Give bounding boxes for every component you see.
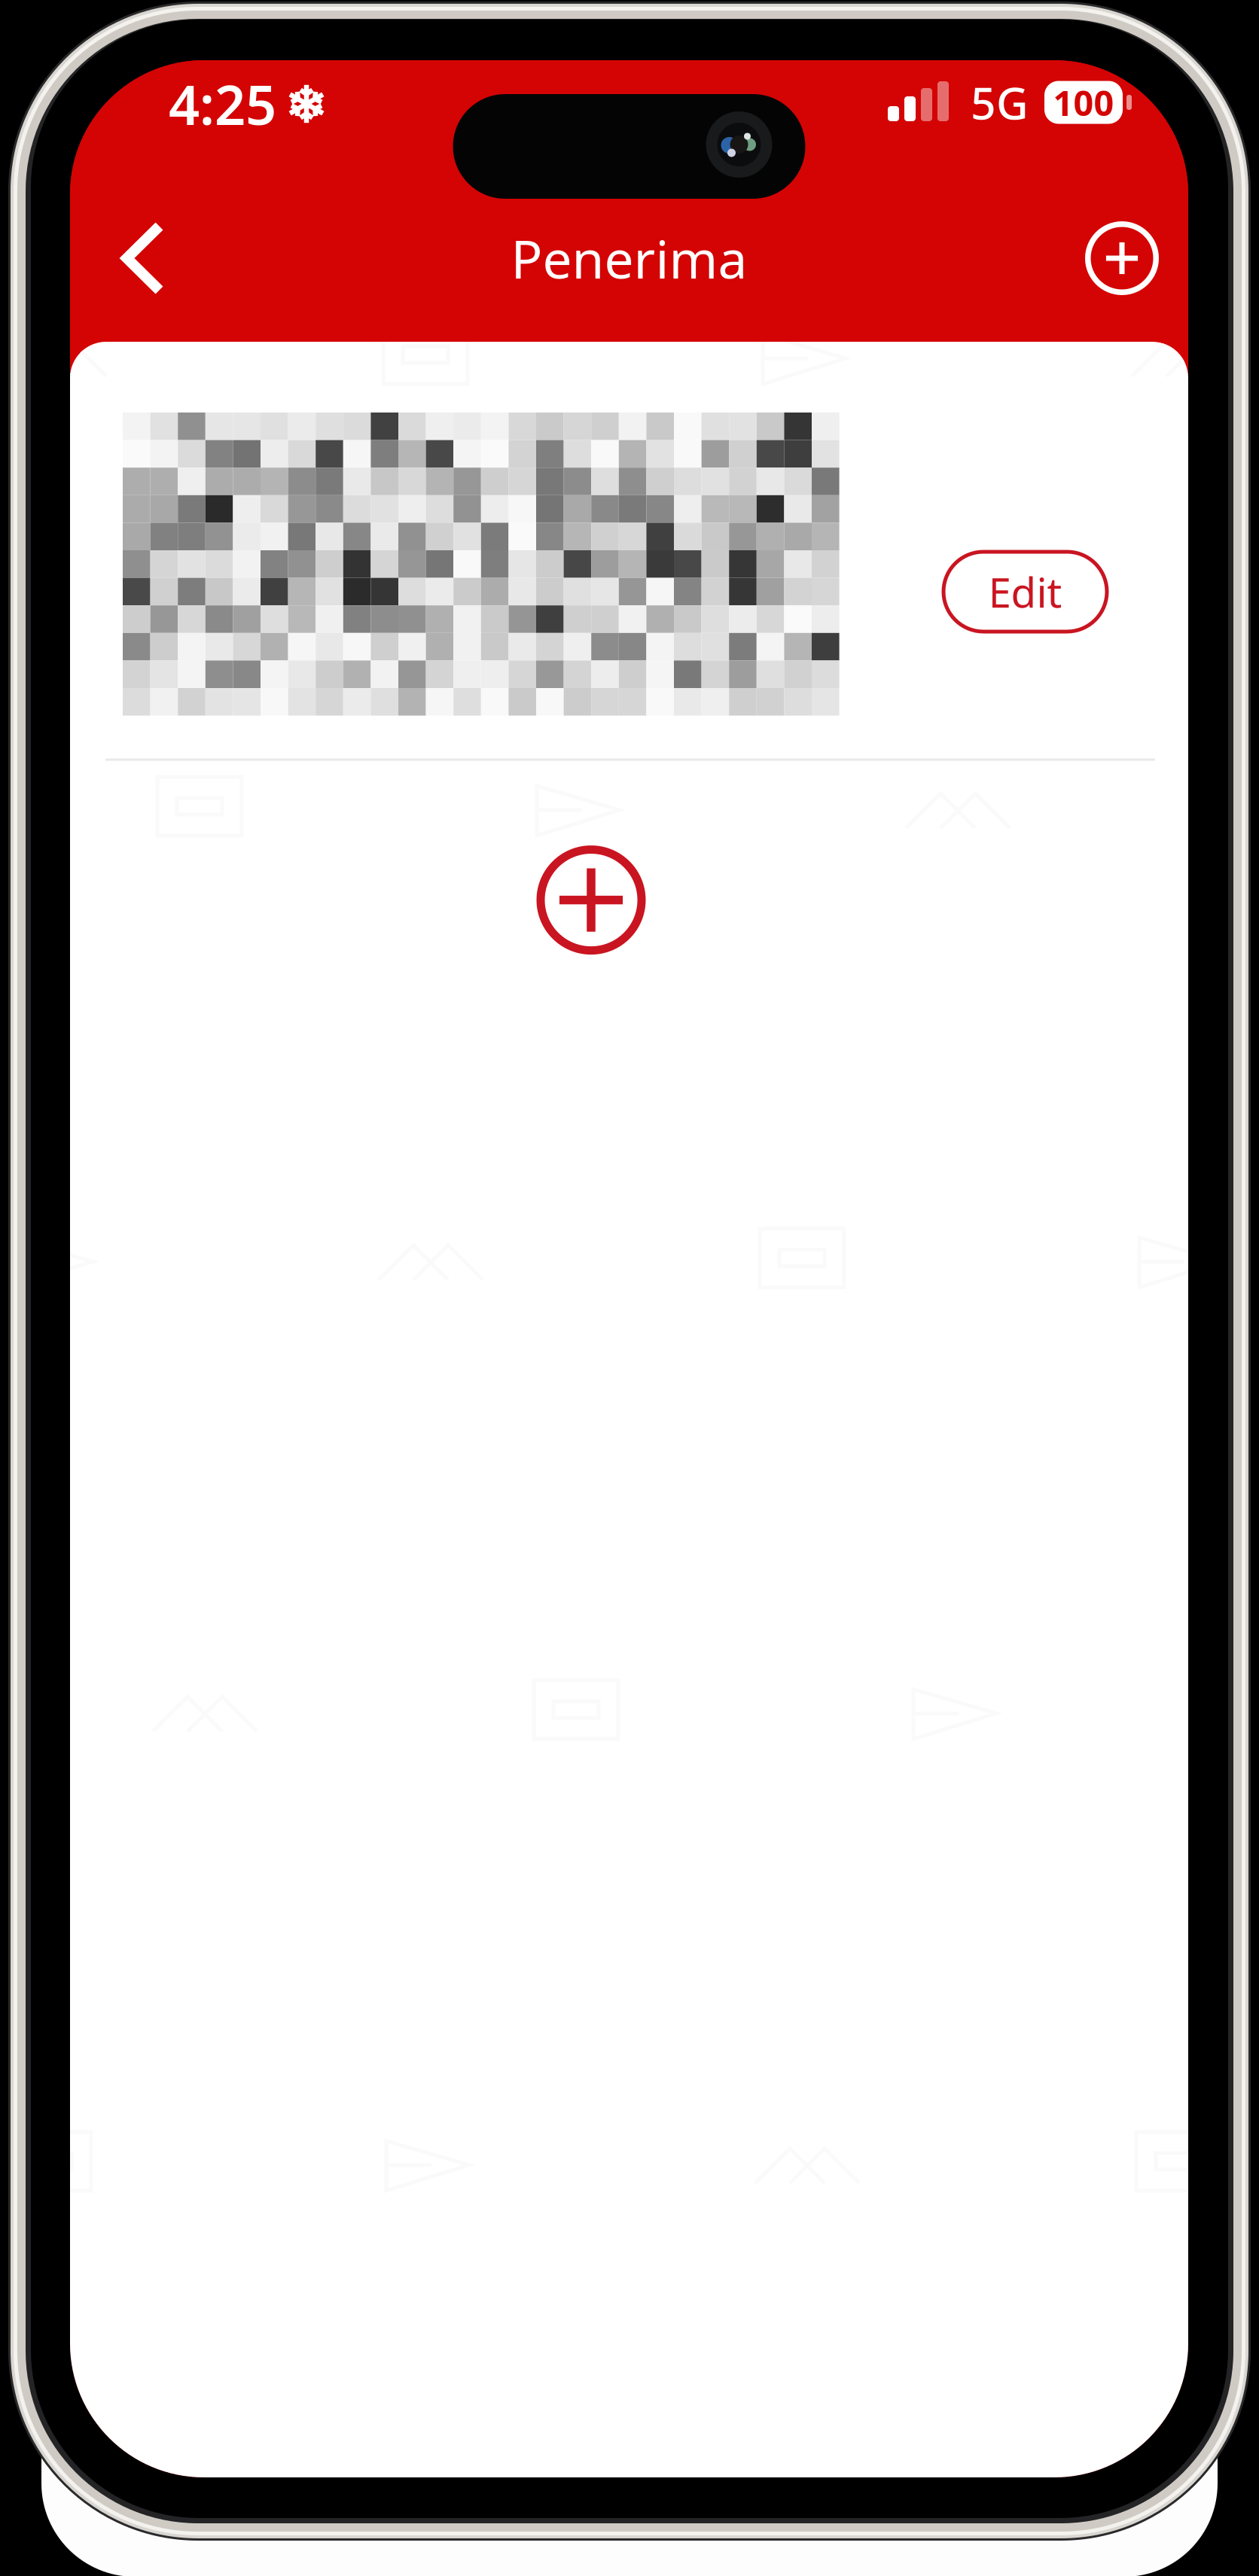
button[interactable]: Add recipient	[1072, 209, 1172, 308]
button[interactable]: Edit	[943, 552, 1107, 632]
staticText: 4:25	[169, 68, 276, 140]
button[interactable]: Back	[93, 209, 193, 308]
staticText: 100	[1053, 79, 1114, 126]
staticText: Edit	[988, 564, 1062, 619]
staticText: 5G	[971, 73, 1029, 132]
staticText: Penerima	[511, 224, 747, 293]
button[interactable]: Add recipient	[520, 829, 663, 972]
